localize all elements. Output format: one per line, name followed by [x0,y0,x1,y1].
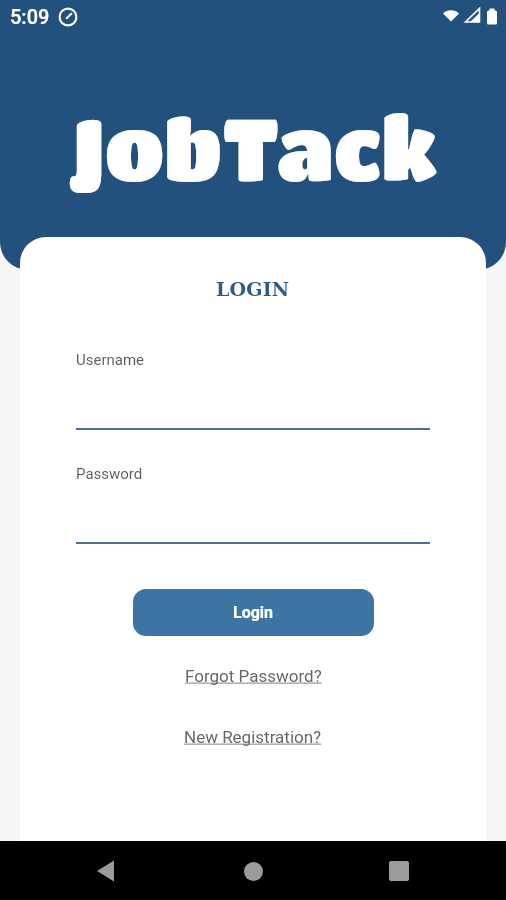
button[interactable]: Username [76,351,430,430]
staticText: Forgot Password? [185,666,322,686]
button[interactable]: New Registration? [180,723,326,751]
staticText: Username [76,351,145,369]
staticText: Login [233,603,274,622]
staticText: New Registration? [184,727,322,747]
staticText: 5:09 [10,5,50,28]
button[interactable] [379,851,419,891]
staticText: Password [76,465,143,483]
button[interactable] [233,851,273,891]
staticText: LOGIN [216,278,290,300]
staticText: JobTack [69,97,437,197]
button[interactable]: Login [133,589,374,636]
button[interactable] [86,851,126,891]
button[interactable]: Password [76,465,430,544]
button[interactable]: Forgot Password? [181,662,326,690]
